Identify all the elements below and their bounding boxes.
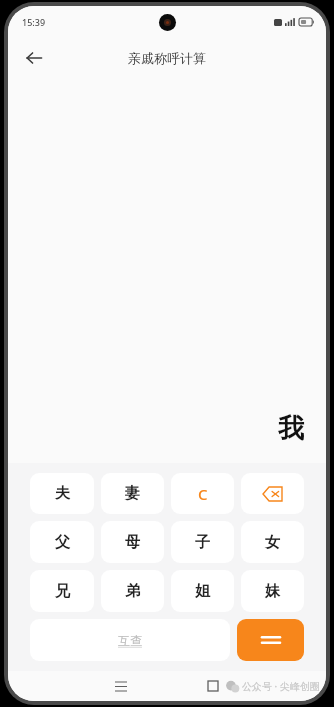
staticText: 妹: [265, 582, 280, 601]
staticText: 女: [265, 533, 280, 552]
button[interactable]: 兄: [30, 570, 94, 612]
staticText: C: [198, 484, 208, 504]
button[interactable]: 姐: [171, 570, 234, 612]
staticText: 我: [278, 412, 304, 445]
button[interactable]: C: [171, 473, 234, 514]
staticText: 弟: [125, 582, 140, 601]
button[interactable]: 弟: [101, 570, 164, 612]
staticText: 亲戚称呼计算: [128, 50, 206, 66]
staticText: 妻: [125, 484, 140, 503]
button[interactable]: 妹: [241, 570, 304, 612]
staticText: 公众号 · 尖峰创圈: [242, 679, 320, 693]
button[interactable]: 夫: [30, 473, 94, 514]
staticText: 15:39: [22, 16, 46, 28]
button[interactable]: Back: [16, 40, 52, 76]
button[interactable]: Home: [191, 673, 235, 699]
staticText: 母: [125, 533, 140, 552]
staticText: 姐: [195, 582, 210, 601]
button[interactable]: 子: [171, 521, 234, 563]
button[interactable]: Equals: [237, 619, 304, 661]
button[interactable]: 母: [101, 521, 164, 563]
staticText: 兄: [55, 582, 70, 601]
staticText: 子: [195, 533, 210, 552]
button[interactable]: 互查: [30, 619, 230, 661]
button[interactable]: Backspace: [241, 473, 304, 514]
button[interactable]: 妻: [101, 473, 164, 514]
button[interactable]: Recent apps: [99, 673, 143, 699]
staticText: 互查: [118, 633, 142, 648]
button[interactable]: 女: [241, 521, 304, 563]
button[interactable]: 父: [30, 521, 94, 563]
staticText: 父: [55, 533, 70, 552]
staticText: 夫: [55, 484, 70, 503]
